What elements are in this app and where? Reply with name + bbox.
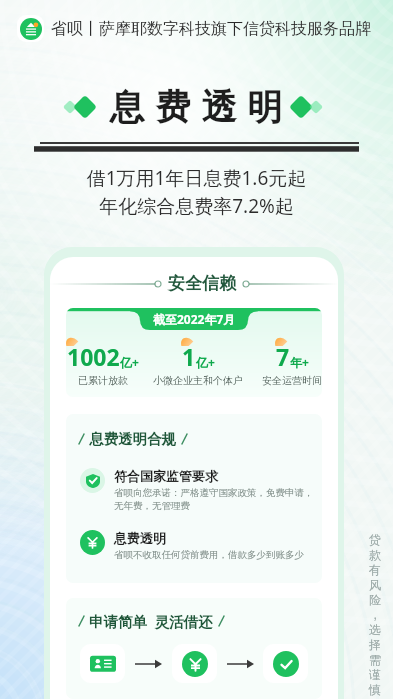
button[interactable]: 审核通过: [263, 644, 308, 683]
staticText: 择: [369, 637, 381, 652]
staticText: 省呗不收取任何贷前费用，借款多少到账多少: [114, 549, 304, 561]
staticText: 风: [369, 577, 381, 592]
staticText: 亿+: [196, 354, 215, 370]
staticText: 年化综合息费率7.2%起: [0, 193, 393, 219]
staticText: 需: [369, 652, 381, 667]
staticText: 亿+: [120, 354, 139, 370]
staticText: 安全运营时间: [262, 374, 322, 387]
button[interactable]: 省呗丨萨摩耶数字科技旗下信贷科技服务品牌: [17, 15, 393, 42]
staticText: 7: [276, 341, 290, 372]
staticText: 安全信赖: [168, 273, 236, 294]
button[interactable]: 申请额度: [172, 644, 217, 683]
staticText: 险: [369, 592, 381, 607]
staticText: 1002: [67, 341, 120, 372]
staticText: 息费透明合规: [89, 430, 176, 448]
staticText: 借1万用1年日息费1.6元起: [0, 165, 393, 191]
staticText: 选: [369, 622, 381, 637]
staticText: 贷: [369, 532, 381, 547]
button[interactable]: 实名认证: [80, 644, 125, 683]
staticText: 息费透明: [114, 530, 166, 546]
staticText: 有: [369, 562, 381, 577]
staticText: 申请简单 灵活借还: [89, 611, 213, 631]
staticText: 息费透明: [104, 85, 288, 129]
staticText: 小微企业主和个体户: [153, 374, 243, 387]
staticText: 慎: [369, 682, 381, 697]
staticText: 截至2022年7月: [153, 311, 236, 327]
staticText: 省呗向您承诺：严格遵守国家政策，免费申请， 无年费，无管理费: [114, 487, 314, 512]
staticText: 年+: [290, 354, 309, 370]
staticText: 省呗丨萨摩耶数字科技旗下信贷科技服务品牌: [51, 19, 371, 39]
staticText: 款: [369, 547, 381, 562]
staticText: 已累计放款: [78, 374, 128, 387]
staticText: ，: [369, 607, 381, 622]
staticText: 1: [182, 341, 196, 372]
staticText: 符合国家监管要求: [114, 468, 218, 484]
staticText: 谨: [369, 667, 381, 682]
